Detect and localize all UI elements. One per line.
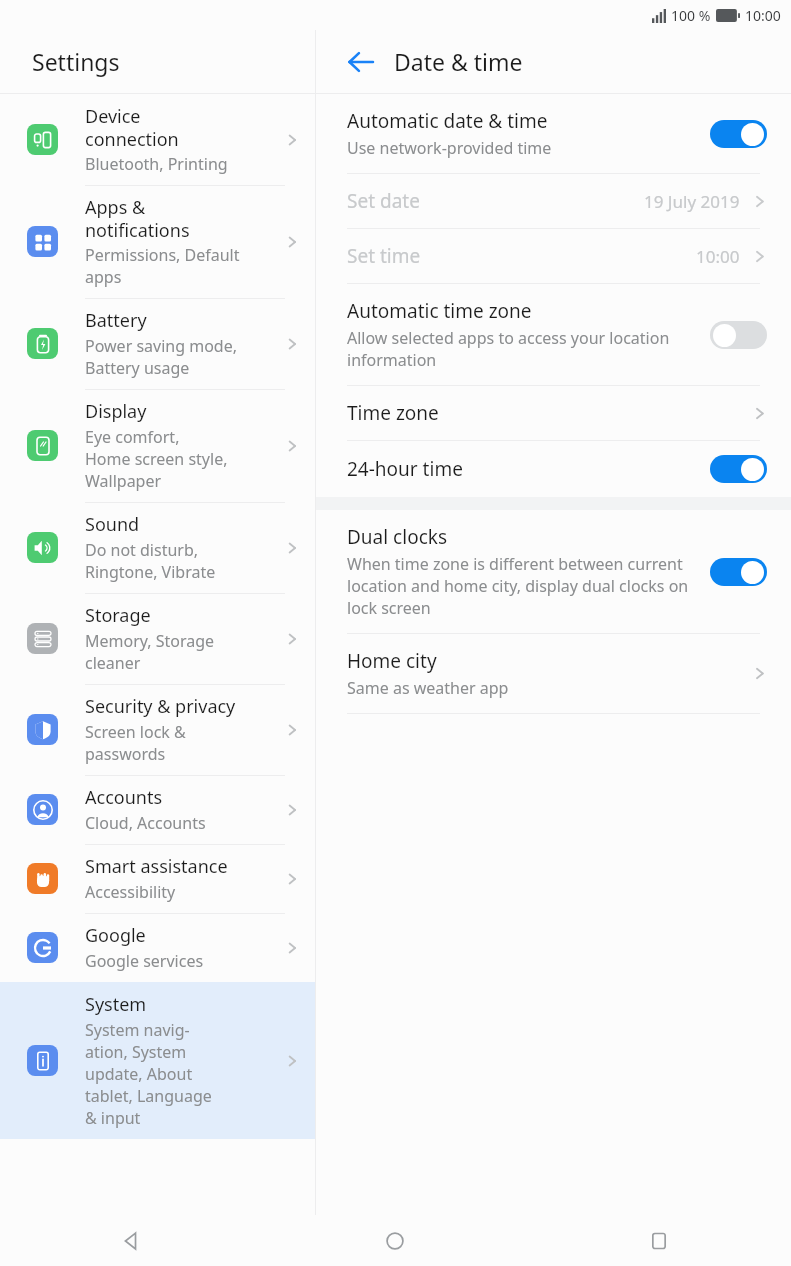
staticText: Settings xyxy=(32,46,120,77)
staticText: Use network-provided time xyxy=(347,137,552,159)
staticText: Set date xyxy=(347,188,420,214)
staticText: System navig- ation, System update, Abou… xyxy=(85,1019,212,1129)
staticText: Smart assistance xyxy=(85,854,228,879)
staticText: Date & time xyxy=(394,46,523,77)
button[interactable]: Home city xyxy=(316,633,791,713)
staticText: Permissions, Default apps xyxy=(85,244,240,288)
button[interactable]: System xyxy=(0,982,315,1139)
staticText: Home city xyxy=(347,648,437,674)
staticText: System xyxy=(85,992,147,1017)
button[interactable]: Recents xyxy=(527,1215,791,1266)
button[interactable]: Sound xyxy=(0,502,315,593)
staticText: 10:00 xyxy=(745,6,781,25)
button[interactable]: Apps & notifications xyxy=(0,185,315,298)
staticText: Automatic time zone xyxy=(347,298,532,324)
staticText: Security & privacy xyxy=(85,694,236,719)
button[interactable]: Dual clocks xyxy=(316,510,791,633)
button[interactable]: Automatic time zone xyxy=(316,283,791,385)
staticText: Screen lock & passwords xyxy=(85,721,186,765)
staticText: Google xyxy=(85,923,146,948)
staticText: Dual clocks xyxy=(347,524,447,550)
button[interactable]: Google xyxy=(0,913,315,982)
button[interactable]: On xyxy=(710,120,767,148)
staticText: Device connection xyxy=(85,104,179,151)
staticText: Display xyxy=(85,399,147,424)
button[interactable]: Battery xyxy=(0,298,315,389)
staticText: When time zone is different between curr… xyxy=(347,553,698,619)
button[interactable]: Back xyxy=(336,37,386,87)
staticText: Power saving mode, Battery usage xyxy=(85,335,237,379)
button[interactable]: On xyxy=(710,455,767,483)
button[interactable]: Back xyxy=(0,1215,263,1266)
staticText: Accounts xyxy=(85,785,163,810)
button[interactable]: Storage xyxy=(0,593,315,684)
staticText: Apps & notifications xyxy=(85,195,190,242)
staticText: Cloud, Accounts xyxy=(85,812,206,834)
button[interactable]: Set time xyxy=(316,228,791,283)
button[interactable]: Accounts xyxy=(0,775,315,844)
staticText: Storage xyxy=(85,603,151,628)
staticText: Google services xyxy=(85,950,204,972)
staticText: Sound xyxy=(85,512,140,537)
staticText: Time zone xyxy=(347,400,439,426)
button[interactable]: Security & privacy xyxy=(0,684,315,775)
staticText: Same as weather app xyxy=(347,677,509,699)
button[interactable]: Display xyxy=(0,389,315,502)
staticText: 10:00 xyxy=(696,245,740,268)
staticText: Automatic date & time xyxy=(347,108,548,134)
button[interactable]: On xyxy=(710,558,767,586)
staticText: Do not disturb, Ringtone, Vibrate xyxy=(85,539,216,583)
staticText: Set time xyxy=(347,243,421,269)
button[interactable]: Automatic date & time xyxy=(316,94,791,173)
staticText: 100 % xyxy=(671,6,711,25)
button[interactable]: Set date xyxy=(316,173,791,228)
staticText: Memory, Storage cleaner xyxy=(85,630,215,674)
button[interactable]: 24-hour time xyxy=(316,440,791,497)
button[interactable]: Off xyxy=(710,321,767,349)
staticText: Battery xyxy=(85,308,147,333)
staticText: Bluetooth, Printing xyxy=(85,153,228,175)
staticText: 24-hour time xyxy=(347,456,463,482)
button[interactable]: Home xyxy=(263,1215,527,1266)
button[interactable]: Smart assistance xyxy=(0,844,315,913)
button[interactable]: Time zone xyxy=(316,385,791,440)
staticText: Allow selected apps to access your locat… xyxy=(347,327,698,371)
button[interactable]: Device connection xyxy=(0,94,315,185)
staticText: Eye comfort, Home screen style, Wallpape… xyxy=(85,426,228,492)
staticText: 19 July 2019 xyxy=(644,190,740,213)
staticText: Accessibility xyxy=(85,881,176,903)
